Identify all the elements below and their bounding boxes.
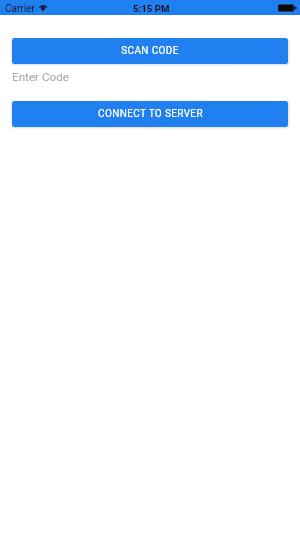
staticText: CONNECT TO SERVER	[98, 108, 203, 120]
staticText: Carrier	[5, 3, 35, 15]
other: Wi-Fi signal	[38, 2, 48, 13]
other: Battery full	[278, 4, 296, 12]
staticText: SCAN CODE	[121, 45, 179, 57]
staticText: Enter Code	[12, 70, 70, 84]
staticText: 5:15 PM	[133, 3, 170, 14]
button[interactable]: SCAN CODE	[12, 38, 288, 64]
button[interactable]: CONNECT TO SERVER	[12, 101, 288, 127]
button[interactable]: Enter Code	[12, 64, 288, 101]
